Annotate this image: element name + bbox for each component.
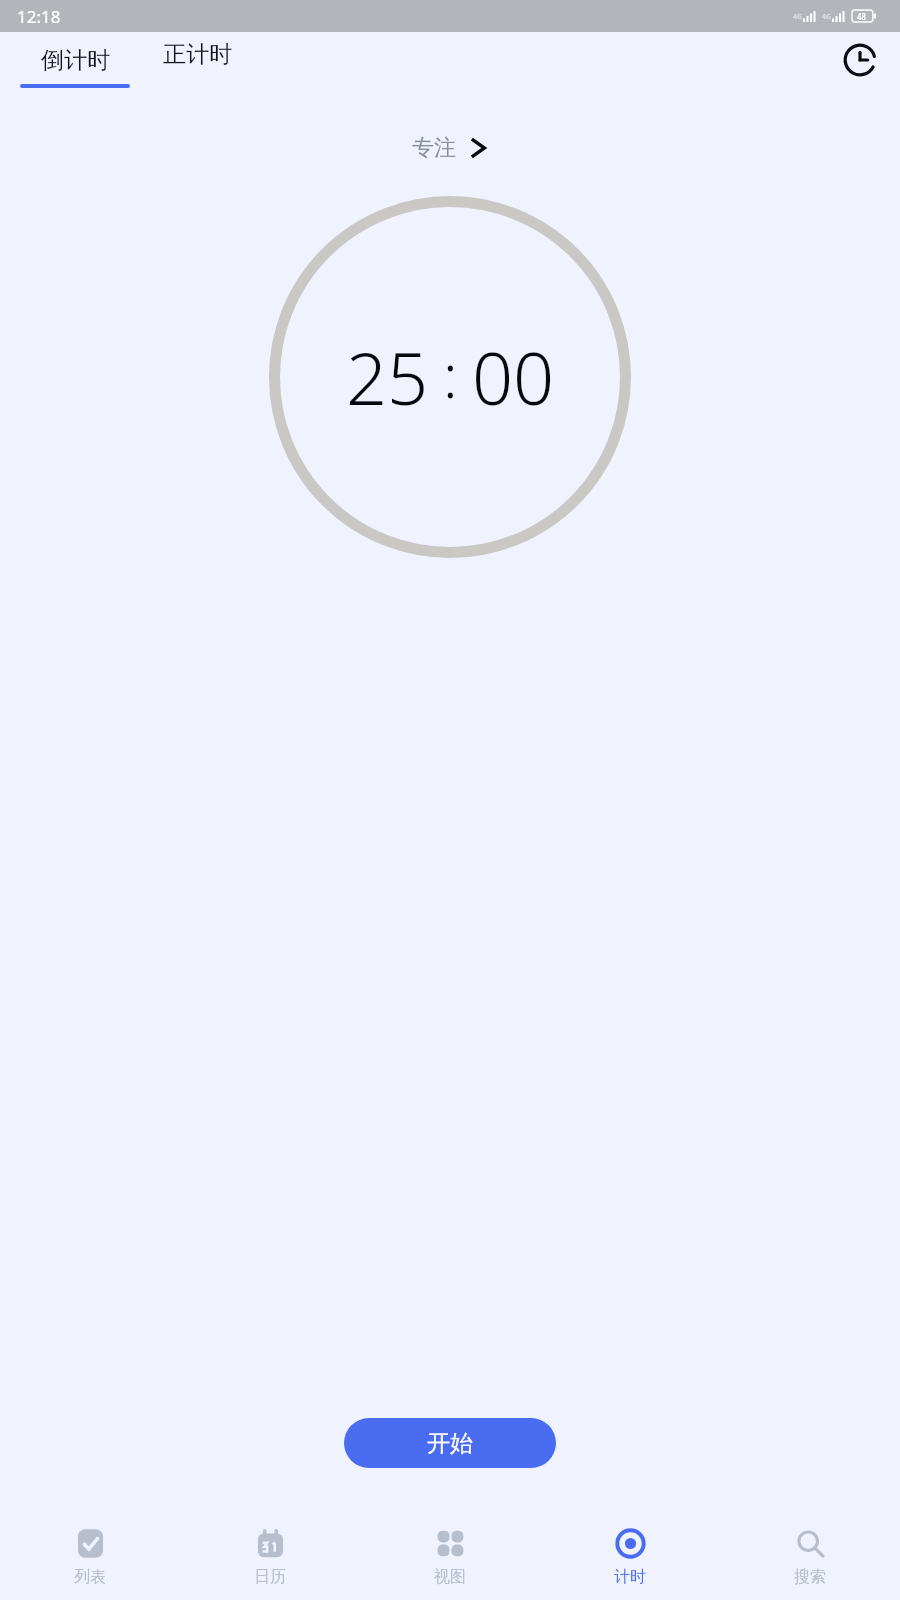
button[interactable]: 视图 [360, 1518, 540, 1596]
button[interactable]: 倒计时 [20, 32, 130, 88]
staticText: 列表 [74, 1567, 106, 1587]
staticText: 开始 [427, 1429, 473, 1458]
staticText: 00 [472, 328, 555, 426]
staticText: 专注 [412, 134, 456, 162]
staticText: 12:18 [17, 5, 61, 28]
button[interactable]: 搜索 [720, 1518, 900, 1596]
staticText: 搜索 [794, 1567, 826, 1587]
staticText: 正计时 [163, 40, 232, 69]
staticText: 日历 [254, 1567, 286, 1587]
staticText: 视图 [434, 1567, 466, 1587]
staticText: 25 [346, 328, 429, 426]
button[interactable]: 日历 [180, 1518, 360, 1596]
staticText: 4G [822, 12, 832, 22]
staticText: 倒计时 [41, 46, 110, 75]
staticText: 计时 [614, 1567, 646, 1587]
staticText: 48 [857, 11, 867, 22]
button[interactable]: 计时 [540, 1518, 720, 1596]
button[interactable]: 列表 [0, 1518, 180, 1596]
button[interactable]: 专注 [402, 130, 498, 166]
staticText: : [443, 334, 458, 416]
button[interactable]: 正计时 [142, 32, 252, 88]
staticText: 4G [793, 12, 803, 22]
button[interactable]: History [832, 32, 888, 88]
button[interactable]: 开始 [344, 1418, 556, 1468]
